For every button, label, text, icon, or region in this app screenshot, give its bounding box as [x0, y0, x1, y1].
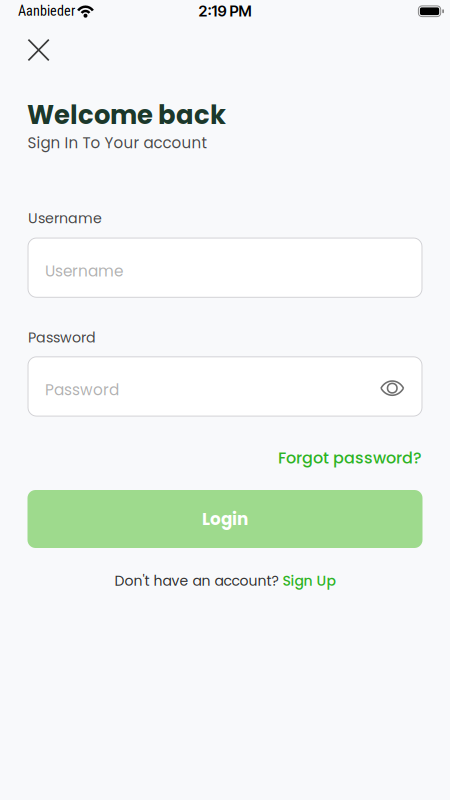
- staticText: Sign Up: [282, 571, 335, 591]
- staticText: Password: [45, 379, 119, 401]
- button[interactable]: Login: [27, 490, 422, 548]
- staticText: Forgot password?: [278, 447, 422, 469]
- staticText: Sign In To Your account: [27, 132, 206, 153]
- staticText: Aanbieder: [18, 3, 75, 19]
- staticText: Username: [45, 260, 123, 282]
- button[interactable]: Close: [28, 40, 49, 60]
- staticText: Don't have an account?: [114, 571, 278, 591]
- button[interactable]: Forgot password?: [278, 447, 422, 469]
- staticText: Login: [202, 507, 248, 531]
- button[interactable]: Show password: [381, 377, 403, 396]
- staticText: 2:19 PM: [198, 2, 251, 20]
- button[interactable]: Password: [27, 356, 422, 417]
- button[interactable]: Sign Up: [278, 571, 335, 591]
- staticText: Username: [28, 208, 102, 228]
- staticText: Password: [28, 328, 96, 347]
- staticText: Welcome back: [27, 97, 226, 133]
- button[interactable]: Username: [27, 237, 422, 298]
